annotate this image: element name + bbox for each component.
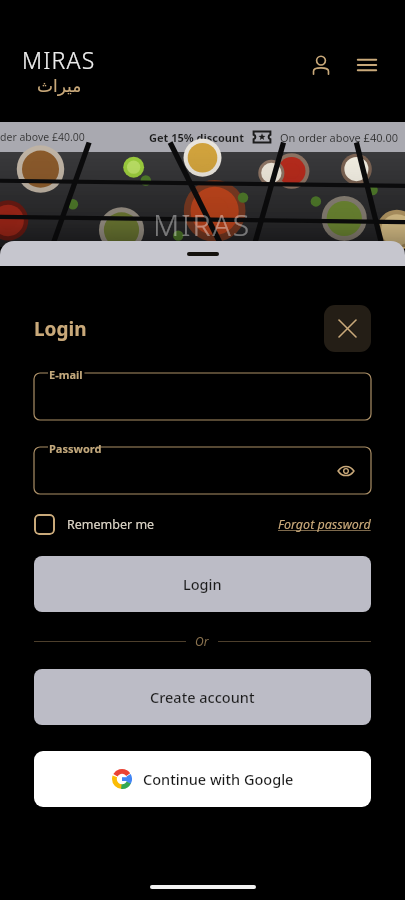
button[interactable]: Login (34, 556, 371, 612)
staticText: Continue with Google (143, 769, 294, 789)
staticText: Create account (150, 687, 255, 707)
staticText: E-mail (49, 367, 83, 382)
staticText: Password (49, 441, 102, 456)
staticText: Or (195, 633, 209, 649)
staticText: der above £40.00 (0, 130, 85, 144)
button[interactable]: Create account (34, 669, 371, 725)
staticText: Get 15% discount (149, 130, 244, 145)
button[interactable]: Forgot password (278, 516, 371, 533)
staticText: MIRAS (153, 204, 252, 245)
staticText: On order above £40.00 (280, 130, 399, 145)
staticText: Remember me (67, 516, 155, 533)
staticText: MIRAS (22, 44, 96, 75)
staticText: Login (34, 316, 87, 342)
button[interactable]: Menu (347, 45, 387, 85)
button[interactable]: Close (324, 305, 371, 352)
button[interactable]: Show password (333, 458, 359, 484)
button[interactable]: der above £40.00 (0, 122, 405, 152)
button[interactable]: Account (301, 45, 341, 85)
button[interactable]: Continue with Google (34, 751, 371, 807)
staticText: ميراث (37, 76, 82, 96)
button[interactable]: Remember me (34, 514, 155, 535)
staticText: Login (183, 574, 222, 594)
